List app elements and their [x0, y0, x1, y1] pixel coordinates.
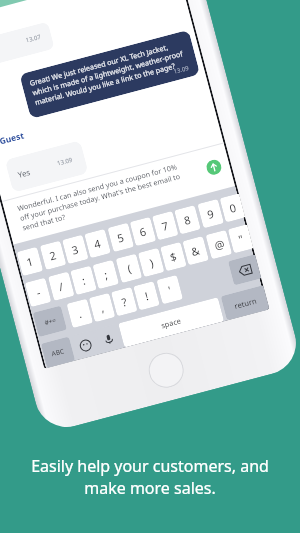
staticText: (	[126, 260, 133, 276]
button[interactable]: 9	[197, 199, 224, 228]
staticText: ?	[120, 294, 129, 310]
staticText: $	[168, 248, 179, 265]
staticText: &	[189, 242, 202, 259]
button[interactable]: (	[116, 254, 142, 283]
staticText: 0	[228, 200, 238, 216]
staticText: 2	[48, 247, 58, 263]
staticText: 7	[160, 217, 170, 234]
button[interactable]: 0	[220, 193, 245, 223]
button[interactable]: :	[70, 266, 97, 295]
staticText: -	[35, 284, 42, 300]
button[interactable]: 6	[130, 217, 156, 246]
button[interactable]: Home	[145, 349, 188, 392]
staticText: 3	[70, 241, 81, 258]
button[interactable]: Backspace	[228, 254, 261, 285]
staticText: '	[166, 282, 173, 297]
staticText: 9	[205, 205, 216, 222]
staticText: @	[213, 236, 226, 253]
button[interactable]: 4	[84, 229, 111, 258]
staticText: #+=	[43, 315, 57, 327]
button[interactable]: -	[25, 278, 51, 307]
button[interactable]: Emoji	[72, 330, 99, 360]
staticText: Wonderful. I can also send you a coupon …	[16, 161, 184, 232]
staticText: ,	[99, 300, 105, 315]
staticText: Yes	[16, 166, 32, 180]
button[interactable]: "	[228, 224, 253, 253]
staticText: 13.09	[56, 156, 74, 167]
button[interactable]: 8	[174, 205, 201, 234]
staticText: !	[143, 288, 150, 303]
other: Emoji	[78, 338, 93, 353]
staticText: ;	[102, 267, 109, 282]
button[interactable]: Dictate	[95, 324, 123, 354]
staticText: Guest	[0, 129, 25, 147]
button[interactable]: 2	[40, 240, 66, 270]
button[interactable]: 3	[62, 235, 89, 264]
staticText: /	[57, 278, 66, 294]
button[interactable]: ABC	[41, 336, 75, 368]
button[interactable]: '	[156, 275, 183, 304]
staticText: space	[160, 315, 183, 330]
button[interactable]: /	[48, 271, 75, 301]
button[interactable]: ?	[111, 287, 138, 316]
button[interactable]: )	[138, 248, 164, 277]
button[interactable]: Send	[205, 158, 223, 176]
button[interactable]: return	[221, 285, 269, 320]
staticText: 8	[182, 212, 193, 228]
button[interactable]: 1	[16, 247, 43, 276]
staticText: ABC	[51, 346, 65, 358]
button[interactable]: .	[66, 299, 93, 328]
button[interactable]: @	[205, 230, 232, 259]
staticText: 6	[138, 223, 148, 240]
staticText: )	[148, 255, 155, 270]
button[interactable]: 7	[152, 211, 179, 240]
button[interactable]: &	[182, 236, 209, 265]
button[interactable]: ,	[89, 293, 115, 322]
other: Dictate	[102, 332, 116, 347]
staticText: 4	[92, 235, 103, 252]
staticText: "	[237, 231, 245, 247]
staticText: Great! We just released our XL Tech Jack…	[28, 38, 187, 107]
staticText: 1	[25, 253, 35, 270]
staticText: :	[80, 273, 87, 288]
button[interactable]: #+=	[33, 305, 67, 337]
staticText: 13.09	[173, 64, 190, 76]
button[interactable]: !	[133, 281, 160, 310]
button[interactable]: $	[160, 242, 187, 271]
staticText: return	[233, 295, 258, 311]
staticText: 13.07	[25, 33, 42, 44]
button[interactable]: 5	[107, 223, 134, 252]
other: Backspace	[238, 264, 253, 277]
staticText: 5	[115, 229, 126, 246]
button[interactable]: ;	[92, 260, 119, 289]
button[interactable]: space	[118, 297, 224, 348]
staticText: .	[76, 306, 83, 321]
staticText: Easily help your customers, and make mor…	[31, 455, 269, 499]
